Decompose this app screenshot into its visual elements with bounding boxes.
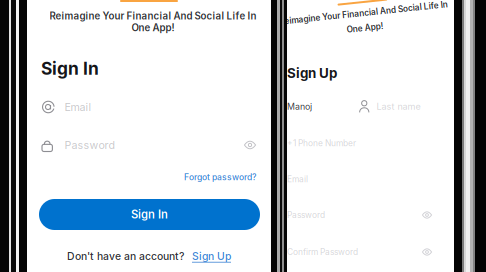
staticText: Sign Up — [287, 65, 337, 81]
button[interactable]: Sign In — [39, 199, 260, 230]
staticText: Forgot password? — [184, 172, 257, 182]
staticText: Reimagine Your Financial And Social Life… — [49, 10, 256, 22]
staticText: Email — [65, 100, 92, 113]
staticText: Sign In — [41, 58, 99, 79]
staticText: Don't have an account? — [67, 250, 184, 263]
staticText: Last name — [376, 101, 420, 112]
staticText: Email — [287, 174, 308, 184]
button[interactable]: Show confirm password — [419, 246, 435, 258]
button[interactable]: Show password — [241, 138, 259, 152]
staticText: One App! — [131, 22, 174, 34]
button[interactable]: Sign Up — [192, 250, 231, 263]
staticText: +1 Phone Number — [287, 138, 356, 148]
staticText: One App! — [345, 23, 382, 33]
staticText: Confirm Password — [287, 247, 358, 257]
button[interactable]: Forgot password? — [184, 172, 257, 182]
staticText: Sign Up — [192, 250, 231, 263]
button[interactable]: Show password — [419, 209, 435, 221]
staticText: Password — [287, 210, 325, 220]
staticText: Reimagine Your Financial And Social Life… — [279, 8, 448, 18]
staticText: Manoj — [287, 101, 312, 112]
staticText: Password — [64, 138, 115, 151]
staticText: Sign In — [131, 208, 168, 221]
